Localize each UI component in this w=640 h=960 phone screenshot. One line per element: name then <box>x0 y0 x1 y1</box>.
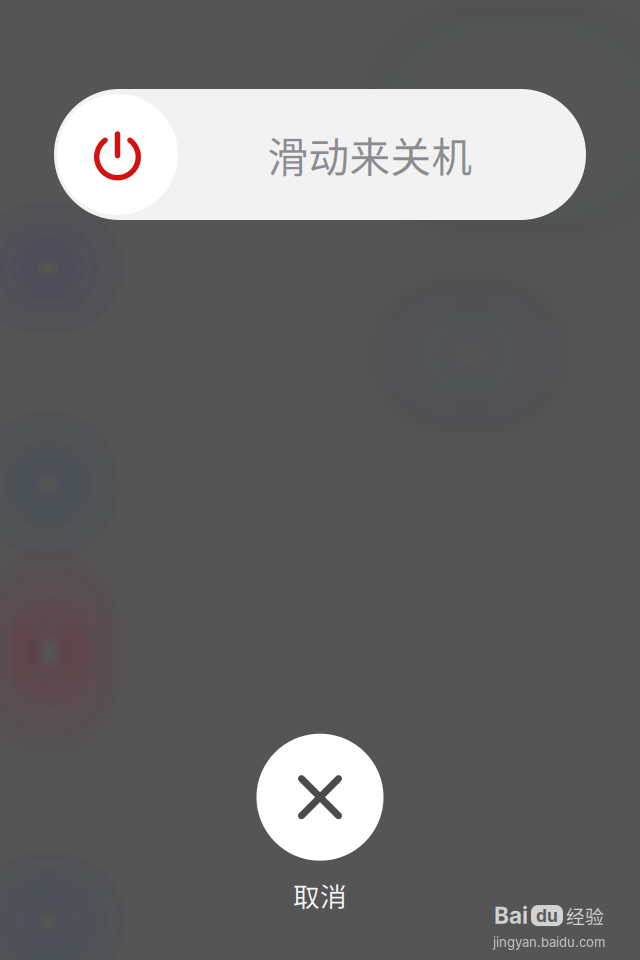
staticText: 取消 <box>293 876 347 914</box>
staticText: 经验 <box>566 902 604 929</box>
staticText: 滑动来关机 <box>267 125 472 184</box>
staticText: jingyan.baidu.com <box>493 934 605 950</box>
staticText: du <box>536 905 558 926</box>
staticText: Bai <box>494 902 528 929</box>
button[interactable]: 滑动来关机 <box>54 89 586 220</box>
button[interactable]: 取消 <box>256 734 383 914</box>
